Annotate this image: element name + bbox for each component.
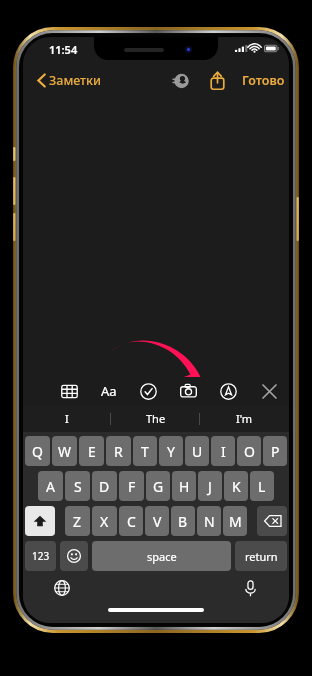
button[interactable]: Aa [95,377,123,405]
button[interactable]: Готово [237,67,289,93]
button[interactable]: space [92,541,231,571]
staticText: W [58,442,72,461]
button[interactable]: Dictation [237,571,263,605]
staticText: G [153,477,164,496]
button[interactable]: A [38,471,63,501]
button[interactable]: D [92,471,117,501]
button[interactable]: W [52,436,77,466]
button[interactable]: Checklist [134,377,162,405]
staticText: L [258,477,266,496]
staticText: I'm [236,411,253,426]
staticText: V [153,512,162,531]
button[interactable]: The [111,405,200,432]
staticText: return [245,549,278,564]
button[interactable]: T [133,436,157,466]
staticText: H [179,477,190,496]
button[interactable]: Table [55,377,83,405]
button[interactable]: Q [25,436,50,466]
button[interactable]: G [146,471,170,501]
button[interactable]: K [224,471,248,501]
button[interactable]: Close [255,377,283,405]
staticText: Заметки [49,72,101,89]
button[interactable]: P [263,436,287,466]
staticText: S [74,477,82,496]
staticText: D [99,477,110,496]
button[interactable]: R [106,436,131,466]
button[interactable]: U [185,436,209,466]
button[interactable]: Emoji [60,541,88,571]
button[interactable]: F [119,471,144,501]
staticText: Aa [101,382,117,400]
button[interactable]: return [235,541,287,571]
staticText: B [178,512,188,531]
button[interactable]: E [79,436,104,466]
staticText: C [127,512,136,531]
button[interactable]: Z [65,506,90,536]
staticText: J [208,477,212,496]
button[interactable]: I [23,405,111,432]
staticText: F [128,477,136,496]
staticText: K [232,477,241,496]
button[interactable]: L [250,471,274,501]
button[interactable]: I [211,436,235,466]
staticText: U [192,442,203,461]
button[interactable]: 123 [25,541,56,571]
staticText: The [146,411,166,426]
button[interactable]: C [119,506,143,536]
staticText: Готово [242,72,285,89]
staticText: X [100,512,109,531]
staticText: Q [32,442,43,461]
button[interactable]: Shift [25,506,55,536]
staticText: T [141,442,149,461]
staticText: M [229,512,242,531]
button[interactable]: S [65,471,90,501]
button[interactable]: X [92,506,117,536]
button[interactable]: J [198,471,222,501]
button[interactable]: N [197,506,221,536]
button[interactable]: Заметки [31,67,107,93]
button[interactable]: Markup [214,377,242,405]
button[interactable]: H [172,471,196,501]
button[interactable]: Change keyboard [49,571,75,605]
staticText: I [221,442,226,461]
button[interactable]: M [223,506,247,536]
staticText: P [271,442,280,461]
button[interactable]: Y [159,436,183,466]
staticText: 123 [32,549,50,563]
staticText: N [204,512,215,531]
staticText: 11:54 [49,42,78,57]
button[interactable]: Backspace [257,506,287,536]
staticText: Y [167,442,175,461]
button[interactable]: I'm [200,405,289,432]
staticText: Z [73,512,82,531]
staticText: O [244,442,255,461]
staticText: A [46,477,55,496]
button[interactable]: V [145,506,169,536]
button[interactable]: Camera [174,377,202,405]
button[interactable]: O [237,436,261,466]
staticText: E [88,442,96,461]
button[interactable]: Add people [167,67,195,95]
staticText: I [65,411,69,426]
button[interactable]: B [171,506,195,536]
staticText: space [147,549,177,564]
staticText: R [114,442,123,461]
button[interactable]: Share [203,66,231,94]
